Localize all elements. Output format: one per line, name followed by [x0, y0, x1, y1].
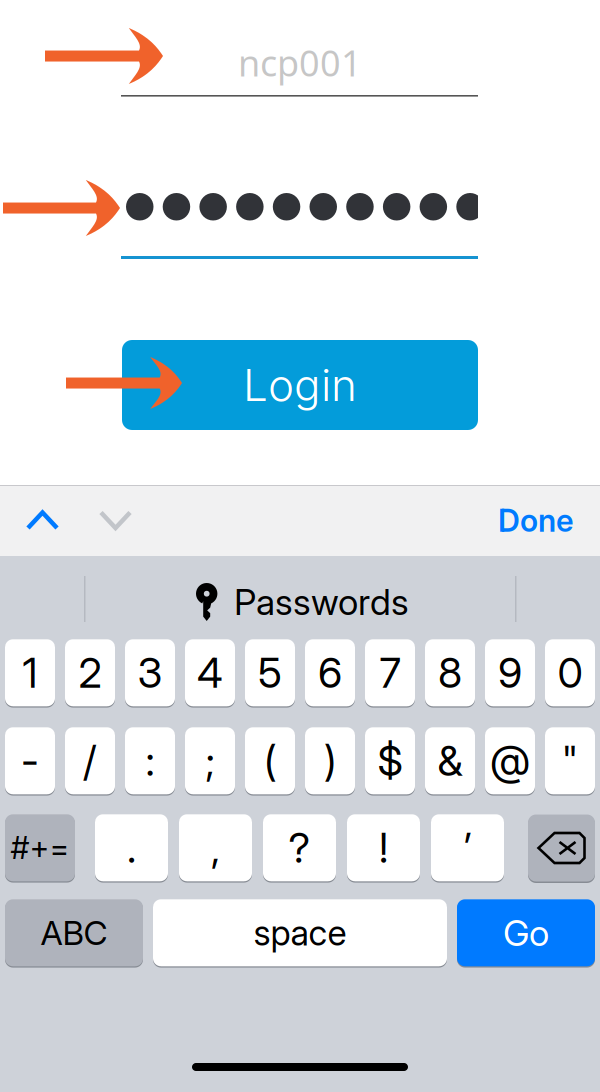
button[interactable]: ABC [5, 898, 143, 968]
staticText: space [253, 912, 346, 954]
staticText: 5 [258, 648, 282, 698]
staticText: ) [324, 736, 336, 786]
button[interactable]: Go [457, 898, 595, 968]
staticText: Login [243, 358, 357, 412]
staticText: 8 [438, 648, 462, 698]
button[interactable]: #+= [5, 813, 75, 883]
button[interactable]: 6 [305, 638, 355, 708]
staticText: 7 [379, 648, 400, 698]
button[interactable]: . [95, 813, 168, 883]
button[interactable]: / [65, 726, 115, 796]
button[interactable]: Previous field [0, 485, 86, 556]
button[interactable]: & [425, 726, 475, 796]
staticText: 2 [78, 648, 101, 698]
staticText: - [21, 736, 39, 786]
button[interactable]: Login [122, 340, 478, 430]
button[interactable]: 4 [185, 638, 235, 708]
staticText: 6 [318, 648, 342, 698]
button[interactable]: ? [263, 813, 336, 883]
staticText: #+= [10, 829, 69, 866]
staticText: ? [288, 823, 310, 873]
staticText: ! [379, 823, 388, 873]
staticText: / [83, 736, 97, 786]
staticText: ABC [40, 913, 107, 953]
staticText: & [437, 736, 462, 786]
button[interactable]: : [125, 726, 175, 796]
button[interactable]: Done [484, 480, 588, 561]
staticText: 3 [137, 648, 162, 698]
button[interactable]: 8 [425, 638, 475, 708]
staticText: @ [490, 736, 530, 786]
staticText: 4 [197, 648, 223, 698]
staticText: ’ [463, 823, 471, 873]
button[interactable]: - [5, 726, 55, 796]
staticText: $ [377, 736, 402, 786]
button[interactable]: " [545, 726, 595, 796]
staticText: 1 [22, 648, 37, 698]
button[interactable]: 3 [125, 638, 175, 708]
staticText: ; [205, 736, 214, 786]
button[interactable]: space [153, 898, 447, 968]
staticText: : [145, 736, 154, 786]
button[interactable]: 9 [485, 638, 535, 708]
button[interactable]: 1 [5, 638, 55, 708]
button[interactable]: @ [485, 726, 535, 796]
button[interactable]: ; [185, 726, 235, 796]
button[interactable]: 2 [65, 638, 115, 708]
button[interactable]: 0 [545, 638, 595, 708]
button[interactable]: Delete [528, 813, 595, 883]
staticText: Go [503, 911, 549, 955]
staticText: Passwords [234, 580, 409, 624]
staticText: 9 [498, 648, 522, 698]
staticText: Done [498, 502, 574, 539]
button[interactable]: Next field [86, 485, 145, 556]
staticText: " [561, 736, 578, 786]
staticText: , [211, 823, 220, 873]
button[interactable]: ! [347, 813, 420, 883]
staticText: 0 [557, 648, 582, 698]
button[interactable]: 7 [365, 638, 415, 708]
button[interactable]: , [179, 813, 252, 883]
staticText: ncp001 [238, 38, 362, 87]
button[interactable]: 5 [245, 638, 295, 708]
button[interactable]: ’ [431, 813, 504, 883]
button[interactable]: $ [365, 726, 415, 796]
staticText: ( [264, 736, 276, 786]
staticText: . [127, 823, 136, 873]
button[interactable]: ) [305, 726, 355, 796]
button[interactable]: Passwords [190, 577, 415, 627]
button[interactable]: ( [245, 726, 295, 796]
